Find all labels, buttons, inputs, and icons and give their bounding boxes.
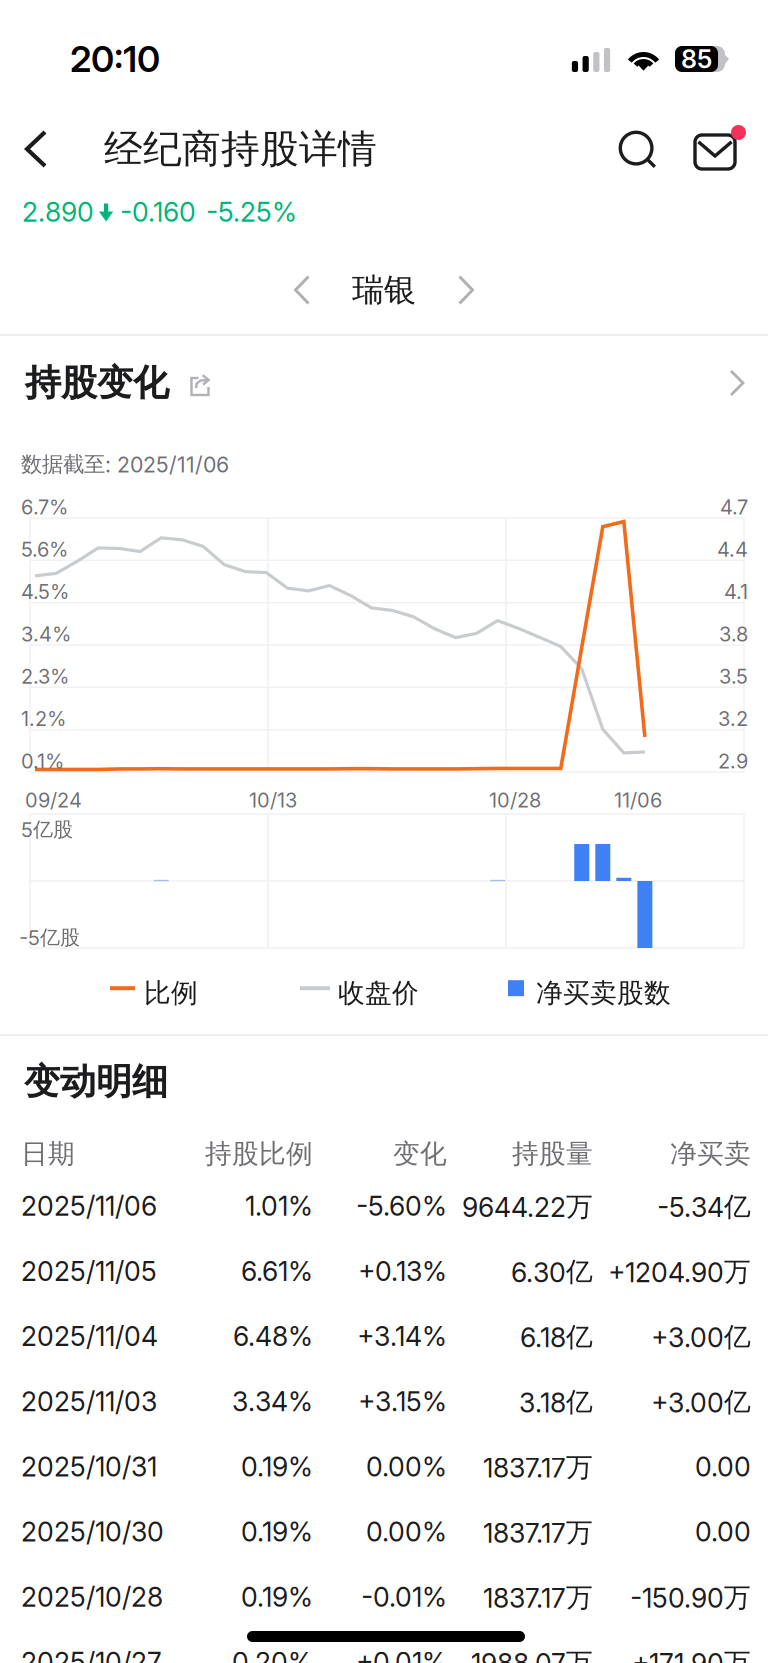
staticText: -150.90万	[630, 1581, 751, 1614]
staticText: 收盘价	[338, 976, 419, 1010]
staticText: 2025/10/31	[21, 1451, 157, 1483]
staticText: 0.00%	[366, 1451, 447, 1483]
staticText: 2025/11/04	[21, 1320, 158, 1353]
staticText: 经纪商持股详情	[104, 125, 377, 173]
staticText: 0.00	[695, 1451, 751, 1483]
button[interactable]: Messages	[686, 120, 744, 178]
staticText: 3.4%	[21, 622, 71, 646]
staticText: 1837.17万	[483, 1451, 593, 1484]
staticText: 2.3%	[21, 664, 69, 688]
staticText: 4.7	[720, 495, 748, 519]
staticText: 0.20%	[232, 1646, 313, 1663]
staticText: -5.60%	[356, 1190, 447, 1222]
staticText: 3.5	[719, 664, 748, 688]
staticText: 净买卖股数	[536, 976, 671, 1010]
staticText: 09/24	[25, 788, 82, 812]
staticText: 6.30亿	[511, 1255, 593, 1289]
staticText: 日期	[21, 1137, 75, 1171]
staticText: 2025/11/03	[21, 1385, 157, 1418]
staticText: 持股变化	[25, 360, 169, 406]
staticText: 6.61%	[241, 1255, 313, 1287]
staticText: -5.34亿	[657, 1190, 751, 1224]
button[interactable]: 持股变化	[0, 348, 768, 418]
staticText: 2025/10/28	[21, 1581, 163, 1613]
staticText: 6.7%	[21, 495, 68, 519]
staticText: 2.9	[718, 749, 748, 773]
staticText: 3.2	[718, 707, 748, 731]
staticText: 0.00%	[366, 1516, 447, 1548]
staticText: 4.4	[717, 537, 748, 561]
staticText: 0.19%	[241, 1451, 313, 1483]
staticText: +3.00亿	[651, 1385, 751, 1419]
staticText: -5.25%	[206, 196, 297, 228]
staticText: 2025/10/27	[21, 1646, 162, 1663]
staticText: 11/06	[614, 788, 662, 812]
staticText: 10/28	[489, 788, 541, 812]
staticText: 3.18亿	[519, 1385, 593, 1419]
button[interactable]: Previous broker	[274, 262, 330, 318]
staticText: +3.00亿	[651, 1320, 751, 1354]
staticText: 2025/10/30	[21, 1516, 164, 1548]
staticText: 1837.17万	[483, 1516, 593, 1549]
staticText: 持股比例	[205, 1137, 313, 1171]
staticText: +1204.90万	[608, 1255, 751, 1289]
staticText: -0.01%	[361, 1581, 447, 1613]
staticText: 4.1	[724, 580, 748, 604]
staticText: 85	[681, 44, 712, 74]
staticText: 瑞银	[352, 270, 416, 310]
staticText: 4.5%	[21, 580, 69, 604]
staticText: 20:10	[70, 37, 160, 81]
staticText: 数据截至: 2025/11/06	[21, 451, 229, 478]
staticText: 2025/11/06	[21, 1190, 157, 1222]
staticText: 3.34%	[232, 1385, 313, 1418]
staticText: 1988.07万	[471, 1646, 593, 1663]
staticText: 10/13	[249, 788, 297, 812]
staticText: +0.01%	[356, 1646, 447, 1663]
staticText: 0.19%	[241, 1516, 313, 1548]
staticText: 0.00	[695, 1516, 751, 1548]
staticText: 6.18亿	[520, 1320, 593, 1354]
button[interactable]: Search	[608, 120, 666, 178]
staticText: -0.160	[120, 196, 196, 228]
staticText: 持股量	[512, 1137, 593, 1171]
staticText: -5亿股	[19, 925, 80, 950]
staticText: 5亿股	[21, 817, 73, 842]
staticText: 3.8	[719, 622, 748, 646]
staticText: +3.14%	[357, 1320, 447, 1353]
staticText: 变化	[393, 1137, 447, 1171]
staticText: 1.01%	[245, 1190, 313, 1222]
staticText: 0.19%	[241, 1581, 313, 1613]
staticText: 1837.17万	[483, 1581, 593, 1614]
staticText: 5.6%	[21, 537, 68, 561]
staticText: +171.90万	[632, 1646, 751, 1663]
staticText: 变动明细	[24, 1059, 168, 1104]
staticText: 比例	[144, 976, 198, 1010]
staticText: 净买卖	[670, 1137, 751, 1171]
button[interactable]: Back	[5, 118, 67, 180]
staticText: 2025/11/05	[21, 1255, 157, 1287]
staticText: 6.48%	[233, 1320, 313, 1353]
button[interactable]: Next broker	[438, 262, 494, 318]
staticText: 1.2%	[21, 707, 66, 731]
staticText: 9644.22万	[462, 1190, 593, 1224]
staticText: +0.13%	[358, 1255, 447, 1287]
staticText: 0.1%	[21, 749, 64, 773]
staticText: 2.890	[22, 196, 94, 228]
staticText: +3.15%	[358, 1385, 447, 1418]
